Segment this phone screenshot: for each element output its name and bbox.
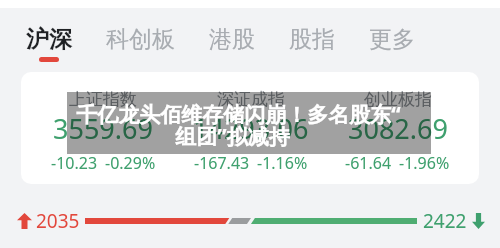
staticText: 上证指数 [69,89,137,110]
staticText: 深证成指 [217,89,285,110]
other: Declining stocks [472,213,485,229]
button[interactable]: 科创板 [106,25,175,62]
staticText: -1.16% [257,152,308,174]
button[interactable]: 创业板指 [324,72,471,184]
staticText: -10.23 [51,152,98,174]
staticText: -167.43 [194,152,250,174]
staticText: 股指 [289,25,335,54]
staticText: 千亿龙头佰维存储闪崩！多名股东“ [76,100,401,129]
staticText: 14293.06 [193,110,309,147]
button[interactable]: 更多 [369,25,415,62]
button[interactable]: 上证指数 [21,72,479,184]
button[interactable]: 千亿龙头佰维存储闪崩！多名股东“ [67,92,431,154]
staticText: 更多 [369,25,415,54]
button[interactable]: Advancing stocks [17,205,485,237]
staticText: 组团”拟减持 [175,122,290,147]
staticText: 科创板 [106,25,175,54]
staticText: 沪深 [26,25,72,54]
staticText: 创业板指 [364,89,432,110]
button[interactable]: 深证成指 [177,72,324,184]
staticText: 3082.69 [348,110,448,147]
staticText: 2035 [36,208,80,234]
staticText: 港股 [209,25,255,54]
staticText: 3559.69 [53,110,153,147]
other: Advancing stocks [17,213,32,229]
staticText: -61.64 [345,152,392,174]
staticText: -1.96% [399,152,450,174]
button[interactable]: 沪深 [26,25,72,62]
staticText: -0.29% [105,152,156,174]
button[interactable]: 股指 [289,25,335,62]
button[interactable]: 上证指数 [29,72,177,184]
staticText: 2422 [423,208,467,234]
button[interactable]: 港股 [209,25,255,62]
